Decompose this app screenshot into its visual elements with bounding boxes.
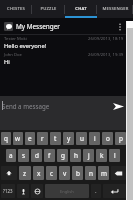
- button[interactable]: x: [33, 166, 44, 180]
- button[interactable]: k: [96, 149, 107, 162]
- button[interactable]: f: [44, 149, 55, 162]
- button[interactable]: CHAT: [65, 0, 97, 18]
- button[interactable]: p: [115, 132, 126, 145]
- button[interactable]: Enter: [103, 184, 126, 198]
- button[interactable]: PUZZLE: [32, 0, 65, 18]
- staticText: g: [61, 151, 65, 160]
- button[interactable]: q: [1, 132, 11, 145]
- button[interactable]: e: [25, 132, 35, 145]
- staticText: John Doe: [4, 52, 22, 58]
- button[interactable]: r: [37, 132, 48, 145]
- staticText: z: [23, 169, 27, 178]
- staticText: h: [74, 151, 78, 160]
- staticText: t: [54, 134, 57, 143]
- button[interactable]: l: [109, 149, 120, 162]
- button[interactable]: Voice input: [17, 184, 29, 198]
- staticText: k: [100, 151, 104, 160]
- button[interactable]: John Doe: [0, 51, 127, 67]
- staticText: u: [80, 134, 84, 143]
- staticText: 26/09/2013, 18:19: [88, 36, 124, 42]
- staticText: e: [28, 134, 32, 143]
- button[interactable]: Send a message: [2, 102, 111, 110]
- staticText: b: [76, 169, 80, 178]
- button[interactable]: z: [19, 166, 31, 180]
- staticText: Send a message: [2, 102, 50, 110]
- staticText: x: [37, 169, 41, 178]
- staticText: i: [94, 134, 96, 143]
- button[interactable]: More options: [115, 18, 125, 35]
- button[interactable]: b: [72, 166, 83, 180]
- staticText: Hello everyone!: [4, 42, 47, 50]
- staticText: Tester Moki: [4, 36, 27, 42]
- button[interactable]: s: [18, 149, 29, 162]
- button[interactable]: c: [46, 166, 57, 180]
- staticText: q: [4, 134, 8, 143]
- staticText: f: [48, 151, 51, 160]
- button[interactable]: g: [57, 149, 68, 162]
- staticText: English: [60, 189, 74, 194]
- staticText: s: [22, 151, 26, 160]
- staticText: PUZZLE: [40, 6, 57, 12]
- button[interactable]: w: [13, 132, 23, 145]
- button[interactable]: .: [91, 184, 101, 198]
- button[interactable]: Shift: [1, 166, 17, 180]
- staticText: o: [106, 134, 110, 143]
- staticText: MESSENGER: [102, 6, 129, 12]
- button[interactable]: t: [50, 132, 61, 145]
- button[interactable]: MESSENGER: [97, 0, 133, 18]
- button[interactable]: Emoji: [31, 184, 43, 198]
- staticText: My Messenger: [16, 22, 60, 31]
- staticText: l: [114, 151, 116, 160]
- staticText: a: [9, 151, 13, 160]
- button[interactable]: m: [98, 166, 109, 180]
- staticText: CHAT: [75, 6, 87, 12]
- button[interactable]: j: [83, 149, 94, 162]
- staticText: p: [119, 134, 123, 143]
- staticText: y: [67, 134, 71, 143]
- staticText: .: [95, 187, 97, 195]
- button[interactable]: y: [63, 132, 74, 145]
- staticText: ?123: [3, 188, 13, 194]
- button[interactable]: CHISTES: [0, 0, 32, 18]
- staticText: n: [89, 169, 93, 178]
- staticText: CHISTES: [7, 6, 25, 12]
- button[interactable]: n: [85, 166, 96, 180]
- staticText: w: [15, 134, 21, 143]
- button[interactable]: ?123: [1, 184, 15, 198]
- button[interactable]: i: [89, 132, 100, 145]
- button[interactable]: o: [102, 132, 113, 145]
- staticText: 26/09/2013, 19:39: [88, 52, 124, 58]
- button[interactable]: d: [31, 149, 42, 162]
- staticText: j: [88, 151, 90, 160]
- button[interactable]: English: [45, 184, 89, 198]
- button[interactable]: a: [6, 149, 16, 162]
- button[interactable]: Tester Moki: [0, 35, 127, 51]
- staticText: m: [101, 169, 107, 178]
- button[interactable]: u: [76, 132, 87, 145]
- staticText: Hi: [4, 58, 10, 66]
- button[interactable]: v: [59, 166, 70, 180]
- staticText: r: [41, 134, 44, 143]
- button[interactable]: Backspace: [111, 166, 126, 180]
- button[interactable]: h: [70, 149, 81, 162]
- staticText: c: [50, 169, 54, 178]
- button[interactable]: Send: [111, 99, 125, 113]
- staticText: v: [63, 169, 67, 178]
- staticText: d: [35, 151, 39, 160]
